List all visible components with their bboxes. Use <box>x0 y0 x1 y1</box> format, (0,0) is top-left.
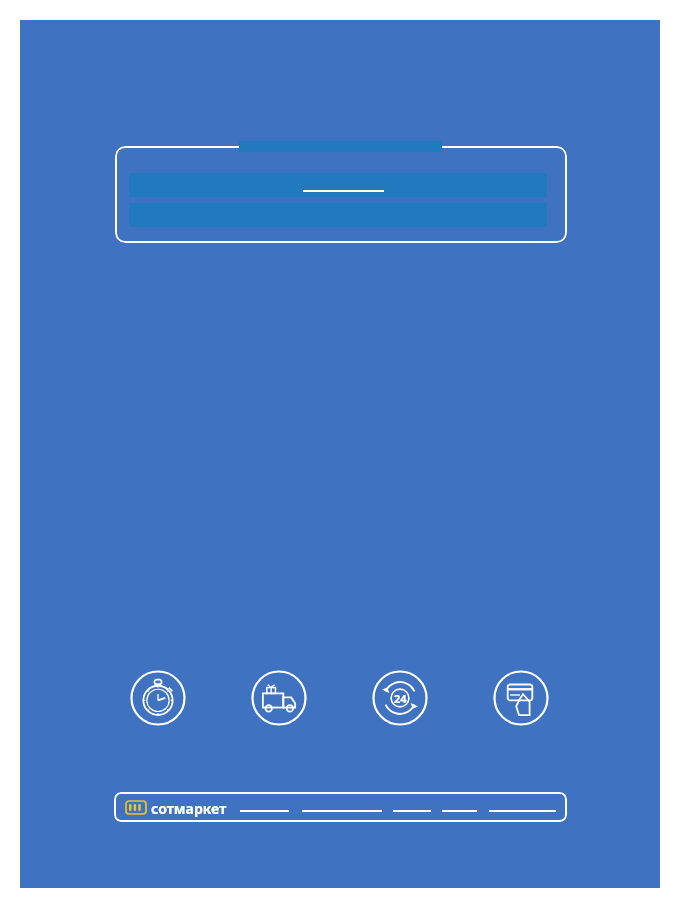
button[interactable]: Card payment <box>493 670 549 726</box>
button[interactable] <box>129 173 547 197</box>
button[interactable]: 24 hour support <box>372 670 428 726</box>
button[interactable]: Sotmarket logo <box>126 801 146 814</box>
button[interactable] <box>115 146 567 243</box>
staticText: 24 <box>394 691 407 706</box>
button[interactable]: Delivery <box>251 670 307 726</box>
button[interactable]: сотмаркет <box>151 799 227 818</box>
button[interactable]: Fast ordering <box>130 670 186 726</box>
